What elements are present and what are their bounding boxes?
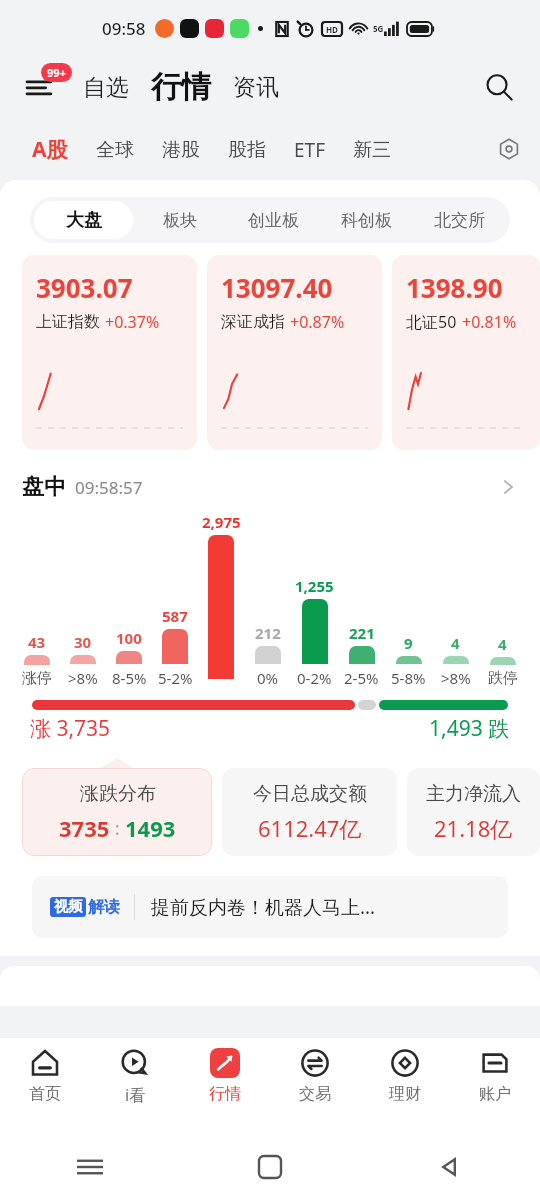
staticText: 大盘 [66,209,102,232]
staticText: 43 [28,632,46,652]
staticText: 4 [498,634,507,654]
staticText: 1,493 跌 [429,714,510,743]
button[interactable]: 行情 [180,1046,270,1134]
staticText: : [110,816,125,841]
staticText: 新三 [353,138,391,162]
staticText: 2-5% [344,668,379,688]
button[interactable]: Search [476,64,522,110]
staticText: 今日总成交额 [253,782,367,806]
staticText: 科创板 [341,210,392,231]
staticText: +0.87% [290,311,345,333]
staticText: 100 [116,628,142,648]
staticText: 9 [404,633,413,653]
staticText: 资讯 [233,73,279,102]
button[interactable]: Menu [14,61,66,113]
staticText: 0-2% [297,668,332,688]
button[interactable]: 自选 [78,69,134,106]
button[interactable]: 涨跌分布 [22,768,212,856]
staticText: 09:58:57 [75,476,143,499]
staticText: 理财 [389,1084,421,1104]
staticText: 221 [349,623,375,643]
button[interactable]: Home [252,1149,288,1185]
staticText: 6112.47亿 [258,813,362,843]
staticText: 0% [257,668,279,688]
staticText: 盘中 [22,473,66,501]
button[interactable]: 1398.90 [392,255,540,450]
button[interactable]: 大盘 [34,201,133,239]
staticText: 3735 [59,813,110,843]
staticText: 30 [74,632,92,652]
staticText: 21.18亿 [434,813,513,843]
button[interactable]: ETF [284,131,335,169]
staticText: >8% [441,668,471,688]
staticText: A股 [32,135,68,164]
button[interactable]: i看 [90,1046,180,1134]
staticText: 1493 [125,813,176,843]
staticText: 跌停 [488,669,518,688]
staticText: 09:58 [102,17,146,40]
staticText: 行情 [151,68,211,106]
staticText: 提前反内卷！机器人马上… [151,894,376,920]
button[interactable]: 新三 [343,132,401,168]
button[interactable]: 科创板 [320,201,413,239]
button[interactable]: 主力净流入 [407,768,540,856]
button[interactable]: 资讯 [228,69,284,106]
staticText: 首页 [29,1084,61,1104]
staticText: 全球 [96,138,134,162]
button[interactable]: A股 [22,129,78,170]
button[interactable]: 理财 [360,1046,450,1134]
button[interactable]: 13097.40 [207,255,382,450]
staticText: 5-8% [391,668,426,688]
staticText: HD [326,24,338,35]
staticText: 自选 [83,73,129,102]
button[interactable]: 港股 [152,132,210,168]
staticText: 账户 [479,1084,511,1104]
button[interactable]: 视频 [32,876,508,938]
staticText: 港股 [162,138,200,162]
button[interactable]: 今日总成交额 [222,768,397,856]
button[interactable]: 板块 [133,201,227,239]
staticText: >8% [68,668,98,688]
staticText: 4 [451,633,460,653]
staticText: 板块 [163,210,197,231]
button[interactable]: Tab settings [488,128,530,170]
staticText: 上证指数 [36,312,100,332]
button[interactable]: 创业板 [227,201,320,239]
staticText: 涨停 [22,669,52,688]
staticText: 深证成指 [221,312,285,332]
staticText: 创业板 [248,210,299,231]
staticText: +0.37% [105,311,160,333]
staticText: 涨跌分布 [80,782,156,806]
button[interactable]: 交易 [270,1046,360,1134]
staticText: 视频 [54,898,82,916]
button[interactable]: 全球 [86,132,144,168]
staticText: 主力净流入 [426,782,521,806]
staticText: 5-2% [158,668,193,688]
button[interactable]: 行情 [148,68,214,106]
button[interactable]: Back [432,1149,468,1185]
staticText: 5G [373,23,384,34]
button[interactable]: 盘中 [22,468,518,506]
staticText: 99+ [47,65,66,80]
staticText: 2,975 [202,512,241,532]
button[interactable]: 3903.07 [22,255,197,450]
staticText: 3903.07 [36,270,133,305]
staticText: +0.81% [462,311,517,333]
staticText: 北交所 [434,210,485,231]
staticText: 13097.40 [221,270,333,305]
button[interactable]: 账户 [450,1046,540,1134]
button[interactable]: 股指 [218,132,276,168]
button[interactable]: Recents [72,1149,108,1185]
staticText: ETF [294,137,325,163]
staticText: 587 [162,606,188,626]
staticText: 1,255 [295,576,334,596]
staticText: 8-5% [112,668,147,688]
button[interactable]: 首页 [0,1046,90,1134]
staticText: 解读 [88,897,120,917]
button[interactable]: 北交所 [413,201,506,239]
staticText: 行情 [209,1084,241,1104]
staticText: 交易 [299,1084,331,1104]
staticText: 涨 3,735 [30,714,111,743]
staticText: 212 [255,623,281,643]
